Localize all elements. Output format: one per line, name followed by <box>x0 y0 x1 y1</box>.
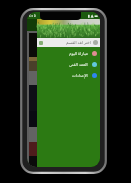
button[interactable]: مباراة اليوم <box>37 48 100 59</box>
staticText: مباراة اليوم <box>69 51 88 56</box>
button[interactable]: الإعدادات <box>37 70 100 81</box>
staticText: اختر لغة القسم <box>66 40 91 45</box>
staticText: ٤:١٥ <box>29 13 36 18</box>
staticText: ▮ ▲ ▬ <box>88 13 98 18</box>
button[interactable]: اختر لغة القسم <box>37 38 100 47</box>
button[interactable]: العمد الفني <box>37 59 100 70</box>
staticText: الإعدادات <box>72 73 88 78</box>
staticText: العمد الفني <box>69 62 88 67</box>
